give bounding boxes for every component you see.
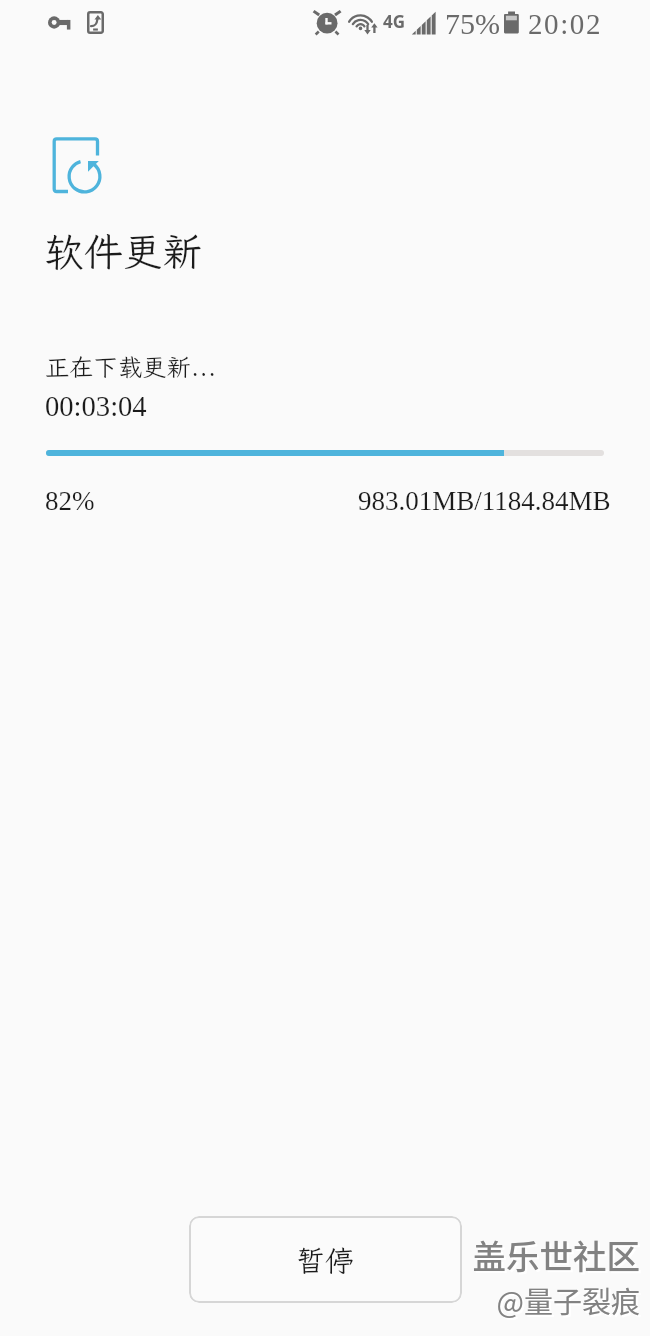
staticText: 暂停	[296, 1241, 355, 1279]
staticText: 4G	[383, 10, 406, 33]
other: Battery 75 percent	[504, 11, 520, 35]
staticText: 75%	[445, 7, 500, 40]
staticText: 盖乐世社区	[400, 1230, 640, 1279]
staticText: 软件更新	[44, 225, 202, 277]
other: VPN active	[48, 14, 76, 32]
other: Software update	[52, 136, 102, 196]
other: Alarm set	[313, 9, 341, 37]
other: One-handed mode	[87, 11, 104, 34]
other: Wi-Fi connected	[344, 9, 380, 37]
staticText: 00:03:04	[45, 391, 147, 423]
staticText: 20:02	[528, 8, 603, 40]
button[interactable]: 暂停	[189, 1216, 462, 1303]
other: Mobile signal strength	[411, 11, 437, 35]
staticText: 983.01MB/1184.84MB	[358, 486, 611, 516]
staticText: 盖乐世社区	[402, 1232, 642, 1281]
staticText: @量子裂痕	[400, 1279, 640, 1321]
staticText: 正在下载更新...	[45, 351, 217, 383]
staticText: @量子裂痕	[402, 1281, 642, 1323]
staticText: 82%	[45, 486, 95, 516]
